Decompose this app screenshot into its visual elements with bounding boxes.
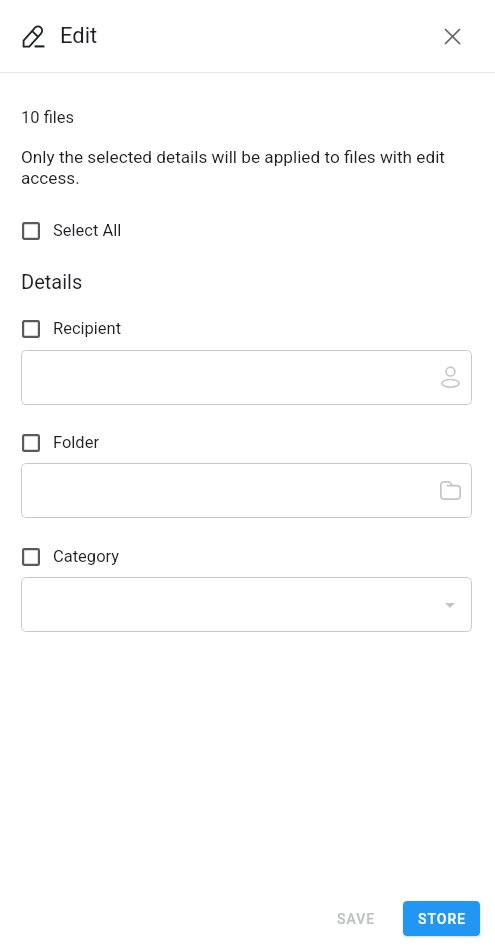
button[interactable]: Folder field [21, 463, 472, 518]
staticText: Only the selected details will be applie… [21, 147, 450, 188]
staticText: Select All [53, 221, 122, 240]
staticText: SAVE [337, 911, 376, 927]
staticText: Edit [60, 23, 98, 49]
staticText: Folder [53, 433, 100, 452]
button[interactable]: STORE [403, 901, 480, 936]
staticText: Details [21, 270, 83, 293]
button[interactable]: Close [428, 12, 476, 60]
staticText: 10 files [21, 108, 75, 127]
button[interactable]: SAVE [321, 900, 392, 936]
staticText: Recipient [53, 319, 122, 338]
button[interactable]: Category field [21, 577, 472, 632]
staticText: Category [53, 547, 120, 566]
button[interactable]: Edit [10, 12, 58, 60]
button[interactable]: Select All [21, 221, 472, 240]
button[interactable]: Recipient field [21, 350, 472, 405]
button[interactable]: Category [21, 547, 472, 566]
button[interactable]: Folder [21, 433, 472, 452]
button[interactable]: Recipient [21, 319, 472, 338]
staticText: STORE [418, 911, 467, 927]
